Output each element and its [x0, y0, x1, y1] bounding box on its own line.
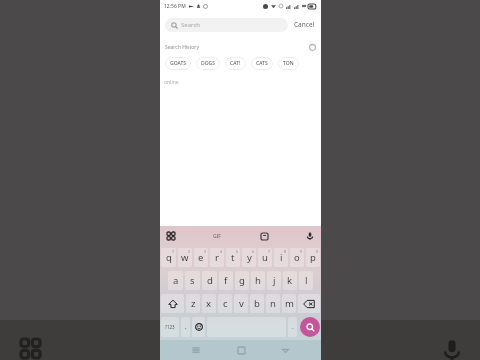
- button[interactable]: u: [258, 248, 272, 267]
- staticText: o: [294, 251, 300, 264]
- button[interactable]: DOGS: [196, 57, 220, 70]
- staticText: i: [280, 251, 283, 264]
- staticText: n: [270, 297, 276, 310]
- button[interactable]: c: [218, 294, 232, 313]
- button[interactable]: Search: [165, 18, 288, 32]
- button[interactable]: r: [210, 248, 224, 267]
- button[interactable]: s: [185, 271, 200, 290]
- button[interactable]: a: [168, 271, 183, 290]
- button[interactable]: e: [194, 248, 208, 267]
- staticText: y: [247, 251, 252, 264]
- staticText: t: [231, 251, 235, 264]
- staticText: Cancel: [294, 20, 315, 29]
- button[interactable]: GOATS: [165, 57, 191, 70]
- button[interactable]: z: [186, 294, 200, 313]
- button[interactable]: Voice input: [304, 230, 316, 242]
- button[interactable]: k: [283, 271, 297, 290]
- button[interactable]: Keyboard menu: [165, 230, 177, 242]
- button[interactable]: h: [251, 271, 265, 290]
- button[interactable]: Recents: [187, 341, 205, 359]
- button[interactable]: ?123: [161, 317, 179, 337]
- staticText: g: [239, 274, 245, 287]
- button[interactable]: .: [288, 317, 297, 337]
- button[interactable]: j: [267, 271, 281, 290]
- staticText: r: [215, 251, 219, 264]
- staticText: a: [173, 274, 179, 287]
- staticText: e: [198, 251, 204, 264]
- button[interactable]: Emoji: [192, 317, 205, 337]
- button[interactable]: y: [242, 248, 256, 267]
- button[interactable]: v: [234, 294, 248, 313]
- button[interactable]: l: [299, 271, 313, 290]
- button[interactable]: n: [266, 294, 280, 313]
- button[interactable]: Search: [300, 317, 320, 337]
- button[interactable]: Clear history: [307, 42, 317, 52]
- staticText: ,: [185, 323, 187, 331]
- button[interactable]: Apps: [19, 337, 41, 359]
- button[interactable]: Back: [276, 341, 294, 359]
- staticText: d: [207, 274, 213, 287]
- button[interactable]: CAT!: [225, 57, 246, 70]
- button[interactable]: d: [202, 271, 217, 290]
- staticText: m: [285, 297, 294, 310]
- staticText: c: [223, 297, 228, 310]
- staticText: s: [190, 274, 195, 287]
- staticText: 12:56 PM: [164, 3, 186, 10]
- staticText: k: [287, 274, 293, 287]
- staticText: GIF: [213, 233, 221, 240]
- staticText: TON: [283, 60, 294, 67]
- button[interactable]: GIF: [210, 231, 224, 242]
- button[interactable]: Home: [232, 341, 250, 359]
- staticText: b: [254, 297, 260, 310]
- staticText: online: [164, 79, 179, 86]
- staticText: 4: [220, 249, 223, 254]
- button[interactable]: TON: [278, 57, 299, 70]
- staticText: 7: [268, 249, 271, 254]
- staticText: Search: [181, 21, 200, 29]
- staticText: CAT!: [230, 60, 241, 67]
- button[interactable]: t: [226, 248, 240, 267]
- button[interactable]: ,: [181, 317, 190, 337]
- button[interactable]: Stickers: [258, 230, 270, 242]
- staticText: l: [305, 274, 308, 287]
- button[interactable]: Microphone: [438, 336, 466, 360]
- staticText: w: [181, 251, 189, 264]
- staticText: 2: [188, 249, 191, 254]
- button[interactable]: i: [274, 248, 288, 267]
- staticText: j: [273, 274, 276, 287]
- staticText: DOGS: [201, 60, 215, 67]
- button[interactable]: w: [178, 248, 192, 267]
- staticText: q: [166, 251, 172, 264]
- staticText: u: [262, 251, 268, 264]
- staticText: h: [255, 274, 261, 287]
- button[interactable]: f: [219, 271, 233, 290]
- button[interactable]: g: [235, 271, 249, 290]
- button[interactable]: b: [250, 294, 264, 313]
- button[interactable]: Shift: [161, 294, 184, 313]
- staticText: 3: [204, 249, 207, 254]
- staticText: v: [239, 297, 244, 310]
- staticText: 1: [172, 249, 175, 254]
- staticText: x: [206, 297, 212, 310]
- button[interactable]: CATS: [251, 57, 273, 70]
- staticText: ?123: [165, 324, 175, 330]
- button[interactable]: q: [161, 248, 176, 267]
- button[interactable]: Cancel: [288, 17, 317, 32]
- staticText: GOATS: [170, 60, 186, 67]
- staticText: CATS: [256, 60, 268, 67]
- staticText: 6: [252, 249, 255, 254]
- staticText: p: [310, 251, 316, 264]
- staticText: 9: [300, 249, 303, 254]
- staticText: Search History: [165, 44, 199, 51]
- staticText: 5: [236, 249, 239, 254]
- button[interactable]: Backspace: [298, 294, 320, 313]
- staticText: z: [191, 297, 196, 310]
- button[interactable]: x: [202, 294, 216, 313]
- button[interactable]: p: [306, 248, 320, 267]
- staticText: 0: [316, 249, 319, 254]
- button[interactable]: o: [290, 248, 304, 267]
- staticText: .: [292, 323, 294, 331]
- staticText: 8: [284, 249, 287, 254]
- button[interactable]: m: [282, 294, 296, 313]
